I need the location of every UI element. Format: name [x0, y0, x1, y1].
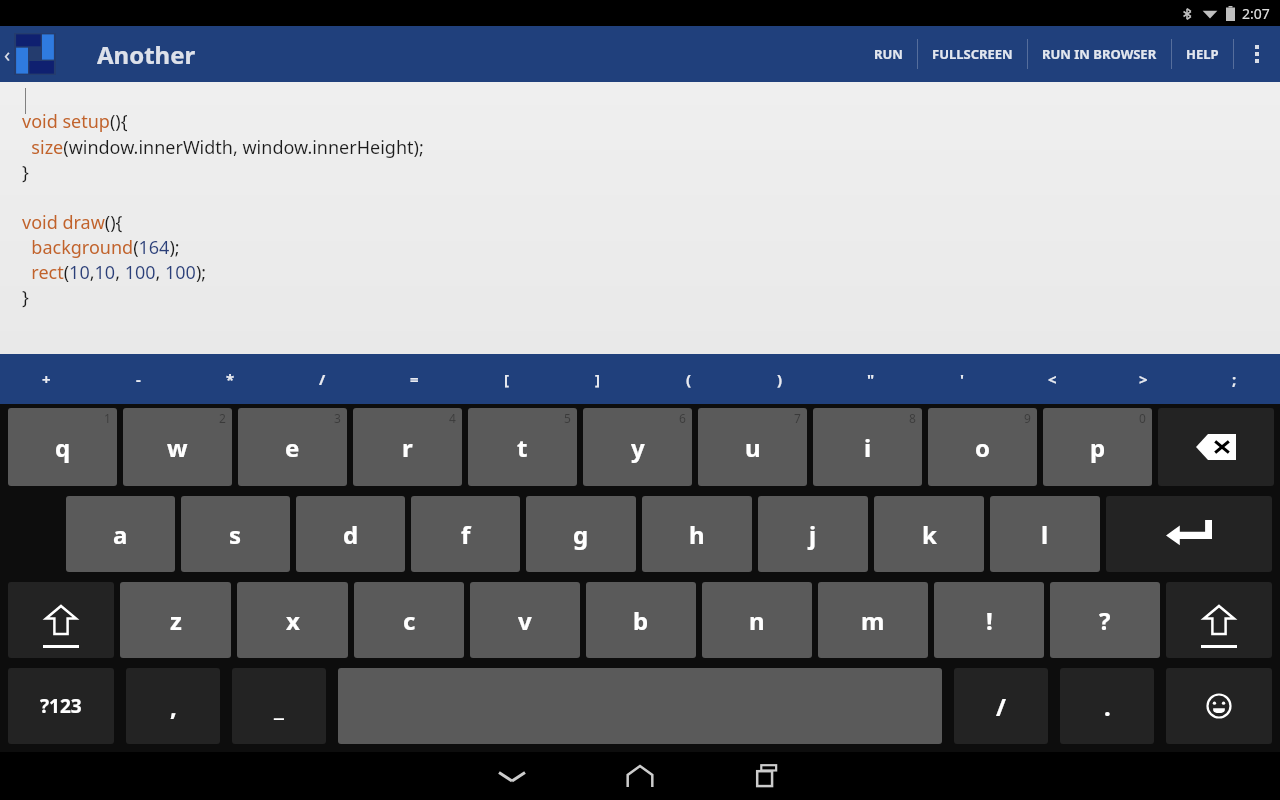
- button[interactable]: =: [368, 354, 460, 404]
- staticText: v: [518, 604, 532, 637]
- button[interactable]: v: [470, 582, 580, 658]
- button[interactable]: u: [698, 408, 807, 486]
- staticText: t: [517, 431, 528, 464]
- button[interactable]: ): [734, 354, 825, 404]
- staticText: .: [1104, 690, 1111, 723]
- button[interactable]: void setup(){ size(window.innerWidth, wi…: [0, 82, 1280, 354]
- staticText: ]: [595, 369, 600, 389]
- staticText: 7: [794, 410, 801, 426]
- staticText: 8: [909, 410, 916, 426]
- button[interactable]: h: [642, 496, 752, 572]
- staticText: FULLSCREEN: [932, 45, 1013, 63]
- button[interactable]: f: [411, 496, 520, 572]
- button[interactable]: l: [990, 496, 1100, 572]
- button[interactable]: ?123: [8, 668, 114, 744]
- staticText: 6: [679, 410, 686, 426]
- button[interactable]: d: [296, 496, 405, 572]
- button[interactable]: +: [0, 354, 92, 404]
- button[interactable]: *: [184, 354, 276, 404]
- button[interactable]: Hide keyboard: [467, 752, 557, 800]
- staticText: 2: [219, 410, 226, 426]
- staticText: c: [403, 604, 416, 637]
- staticText: =: [410, 369, 419, 389]
- staticText: *: [226, 369, 235, 389]
- button[interactable]: <: [1007, 354, 1098, 404]
- staticText: ?123: [40, 693, 82, 719]
- button[interactable]: Back: [0, 26, 57, 82]
- button[interactable]: k: [874, 496, 984, 572]
- staticText: i: [864, 431, 872, 464]
- staticText: r: [402, 431, 413, 464]
- button[interactable]: x: [237, 582, 348, 658]
- button[interactable]: Enter: [1106, 496, 1272, 572]
- button[interactable]: b: [586, 582, 696, 658]
- button[interactable]: HELP: [1172, 26, 1233, 82]
- staticText: m: [861, 604, 885, 637]
- staticText: n: [749, 604, 765, 637]
- staticText: -: [136, 369, 141, 389]
- button[interactable]: n: [702, 582, 812, 658]
- button[interactable]: a: [66, 496, 175, 572]
- button[interactable]: ?: [1050, 582, 1160, 658]
- button[interactable]: ,: [126, 668, 220, 744]
- staticText: k: [922, 518, 937, 551]
- staticText: >: [1139, 369, 1148, 389]
- button[interactable]: [: [460, 354, 552, 404]
- staticText: /: [996, 690, 1006, 723]
- staticText: ;: [1232, 369, 1237, 389]
- button[interactable]: Shift: [8, 582, 114, 658]
- staticText: (: [686, 369, 692, 389]
- staticText: 5: [564, 410, 571, 426]
- button[interactable]: !: [934, 582, 1044, 658]
- button[interactable]: m: [818, 582, 928, 658]
- button[interactable]: Shift: [1166, 582, 1272, 658]
- button[interactable]: RUN: [860, 26, 917, 82]
- staticText: RUN: [874, 45, 903, 63]
- button[interactable]: Emoji: [1166, 668, 1272, 744]
- staticText: o: [975, 431, 990, 464]
- button[interactable]: e: [238, 408, 347, 486]
- button[interactable]: w: [123, 408, 232, 486]
- button[interactable]: q: [8, 408, 117, 486]
- staticText: h: [689, 518, 705, 551]
- button[interactable]: >: [1098, 354, 1189, 404]
- button[interactable]: c: [354, 582, 464, 658]
- button[interactable]: ': [916, 354, 1007, 404]
- staticText: ': [960, 369, 964, 389]
- button[interactable]: -: [92, 354, 184, 404]
- button[interactable]: (: [643, 354, 734, 404]
- button[interactable]: Recent apps: [723, 752, 813, 800]
- button[interactable]: s: [181, 496, 290, 572]
- button[interactable]: y: [583, 408, 692, 486]
- staticText: z: [170, 604, 182, 637]
- button[interactable]: Backspace: [1158, 408, 1274, 486]
- staticText: 3: [334, 410, 341, 426]
- staticText: !: [986, 604, 993, 637]
- button[interactable]: i: [813, 408, 922, 486]
- staticText: RUN IN BROWSER: [1042, 45, 1157, 63]
- staticText: y: [631, 431, 645, 464]
- button[interactable]: r: [353, 408, 462, 486]
- button[interactable]: t: [468, 408, 577, 486]
- staticText: x: [286, 604, 300, 637]
- staticText: w: [167, 431, 188, 464]
- button[interactable]: ": [825, 354, 916, 404]
- button[interactable]: .: [1060, 668, 1154, 744]
- button[interactable]: RUN IN BROWSER: [1028, 26, 1171, 82]
- button[interactable]: FULLSCREEN: [918, 26, 1027, 82]
- button[interactable]: Home: [595, 752, 685, 800]
- button[interactable]: ]: [552, 354, 643, 404]
- staticText: 2:07: [1242, 4, 1270, 23]
- button[interactable]: p: [1043, 408, 1152, 486]
- button[interactable]: z: [120, 582, 231, 658]
- button[interactable]: g: [526, 496, 636, 572]
- button[interactable]: _: [232, 668, 326, 744]
- button[interactable]: j: [758, 496, 868, 572]
- staticText: a: [113, 518, 128, 551]
- button[interactable]: More options: [1234, 26, 1280, 82]
- button[interactable]: /: [954, 668, 1048, 744]
- button[interactable]: ;: [1189, 354, 1280, 404]
- button[interactable]: o: [928, 408, 1037, 486]
- button[interactable]: /: [276, 354, 368, 404]
